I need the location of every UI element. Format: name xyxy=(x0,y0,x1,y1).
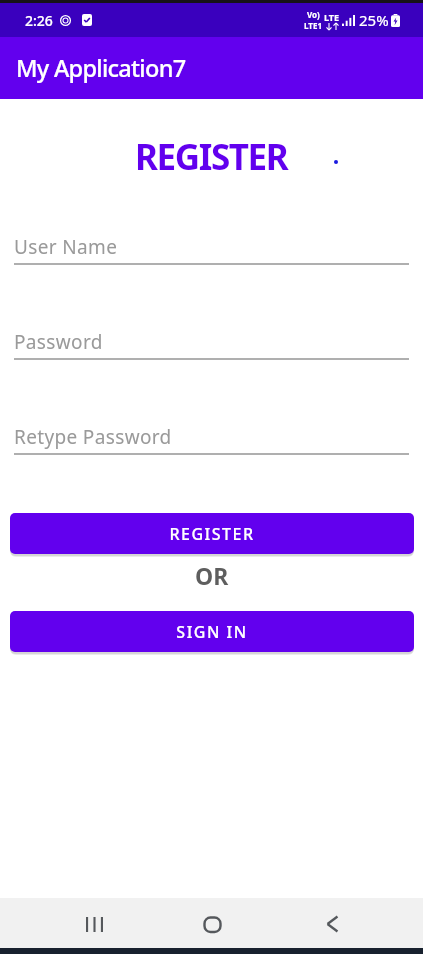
button[interactable]: REGISTER xyxy=(10,513,414,554)
button[interactable]: Recents xyxy=(70,899,118,947)
staticText: LTE xyxy=(324,11,340,23)
staticText: OR xyxy=(195,560,229,591)
staticText: 25% xyxy=(359,10,389,30)
button[interactable]: Password xyxy=(0,329,423,360)
staticText: SIGN IN xyxy=(176,621,248,643)
button[interactable]: Back xyxy=(305,899,353,947)
button[interactable]: User Name xyxy=(0,234,423,265)
button[interactable]: Retype Password xyxy=(0,424,423,455)
staticText: Password xyxy=(14,329,103,355)
staticText: Vo) xyxy=(307,9,320,20)
staticText: User Name xyxy=(14,234,118,260)
staticText: 2:26 xyxy=(25,11,53,30)
staticText: My Application7 xyxy=(16,52,186,84)
button[interactable]: SIGN IN xyxy=(10,611,414,652)
staticText: LTE1 xyxy=(304,20,322,31)
staticText: REGISTER xyxy=(135,133,288,181)
staticText: REGISTER xyxy=(169,523,255,545)
button[interactable]: Home xyxy=(188,899,236,947)
staticText: Retype Password xyxy=(14,424,172,450)
